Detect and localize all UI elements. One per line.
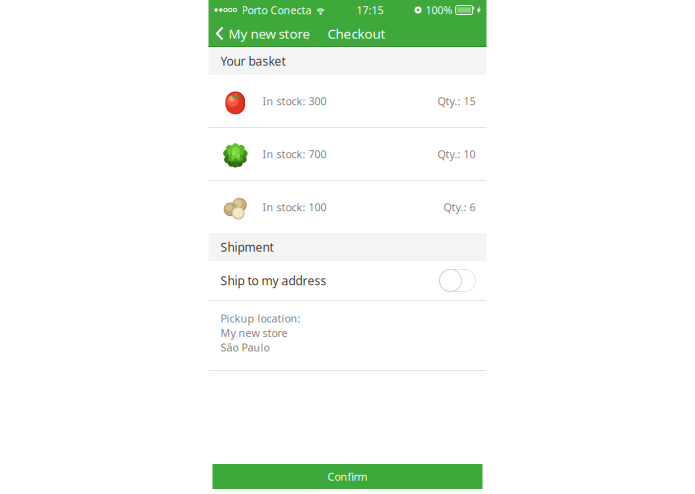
staticText: In stock: 100 [262,200,326,214]
staticText: Confirm [327,469,367,484]
staticText: Qty.: 10 [437,147,475,161]
button[interactable]: My new store [208,20,314,47]
button[interactable]: Ship to my address [208,261,486,300]
button[interactable]: In stock: 700 [208,128,486,180]
button[interactable]: Confirm [212,464,482,489]
staticText: 17:15 [356,3,383,17]
button[interactable]: Checkout [314,20,393,47]
staticText: In stock: 700 [262,147,326,161]
staticText: In stock: 300 [262,94,326,108]
staticText: Ship to my address [220,272,326,288]
staticText: Qty.: 15 [437,94,475,108]
staticText: Pickup location: [220,311,300,325]
staticText: Qty.: 6 [443,200,475,214]
staticText: 100% [425,3,452,17]
button[interactable]: In stock: 300 [208,75,486,127]
staticText: My new store [228,25,310,42]
staticText: Shipment [220,239,273,255]
staticText: Checkout [327,25,385,42]
button[interactable]: In stock: 100 [208,181,486,233]
staticText: Porto Conecta [241,3,311,17]
staticText: My new store [220,326,287,340]
staticText: Your basket [220,53,285,69]
staticText: São Paulo [220,340,269,354]
